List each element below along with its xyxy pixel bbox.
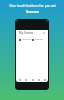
button[interactable]: Morning bbox=[19, 38, 32, 41]
staticText: One touch buttons for pre-set bbox=[9, 3, 56, 7]
button[interactable]: Tab bbox=[30, 77, 35, 82]
staticText: Scenes bbox=[26, 9, 39, 14]
staticText: Morning bbox=[22, 38, 31, 41]
staticText: Evening bbox=[35, 38, 44, 41]
button[interactable]: Tab bbox=[42, 77, 47, 82]
button[interactable]: Evening bbox=[32, 38, 46, 41]
button[interactable]: Tab bbox=[17, 77, 22, 82]
button[interactable]: Tab bbox=[23, 77, 28, 82]
button[interactable]: Tab bbox=[36, 77, 41, 82]
staticText: My Scenes bbox=[19, 31, 34, 35]
